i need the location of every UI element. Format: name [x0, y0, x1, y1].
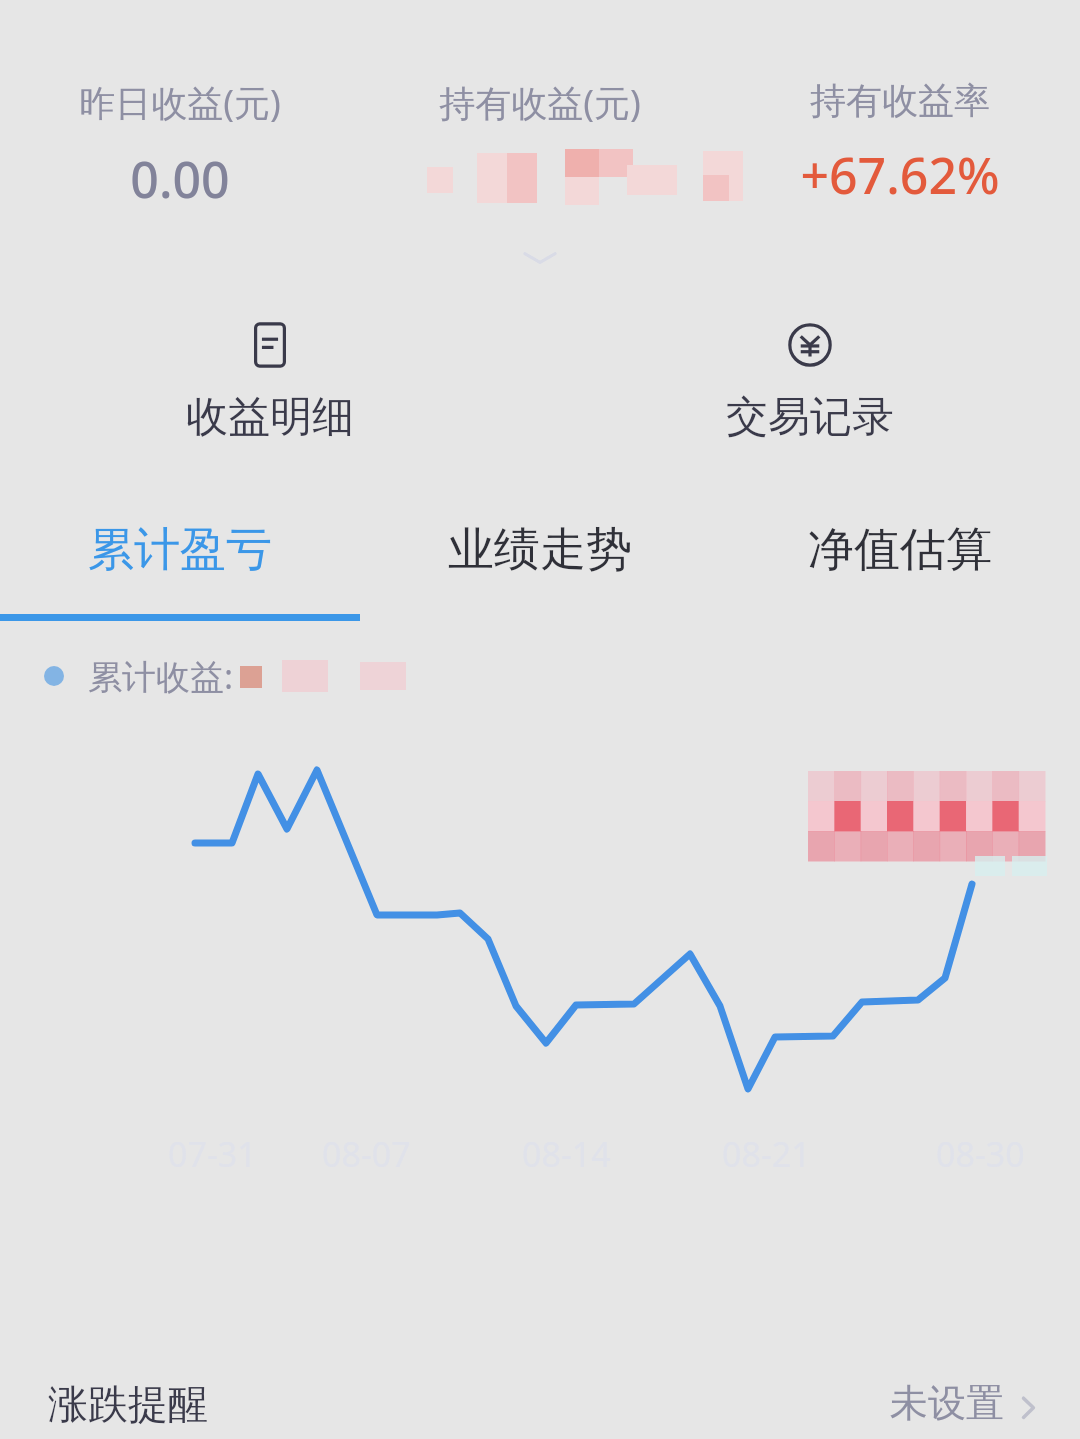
- staticText: +67.62%: [800, 141, 1000, 209]
- button[interactable]: 交易记录: [540, 321, 1080, 444]
- staticText: 昨日收益(元): [79, 78, 281, 127]
- button[interactable]: 持有收益率: [720, 78, 1080, 209]
- staticText: 业绩走势: [448, 521, 632, 579]
- button[interactable]: 累计盈亏: [0, 510, 360, 590]
- button[interactable]: 净值估算: [720, 510, 1080, 590]
- button[interactable]: 展开: [517, 247, 563, 269]
- staticText: 未设置: [890, 1379, 1004, 1427]
- button[interactable]: 业绩走势: [360, 510, 720, 590]
- staticText: 累计盈亏: [88, 521, 272, 579]
- staticText: 收益明细: [186, 391, 354, 444]
- button[interactable]: 收益明细: [0, 321, 540, 444]
- staticText: 持有收益率: [810, 78, 990, 123]
- button[interactable]: 持有收益(元): [360, 78, 720, 201]
- staticText: 持有收益(元): [439, 78, 641, 127]
- button[interactable]: 涨跌提醒: [0, 1379, 1080, 1439]
- staticText: 0.00: [130, 145, 230, 213]
- staticText: 净值估算: [808, 521, 992, 579]
- button[interactable]: 昨日收益(元): [0, 78, 360, 213]
- staticText: 交易记录: [726, 391, 894, 444]
- staticText: 累计收益:: [88, 653, 234, 699]
- staticText: 涨跌提醒: [48, 1379, 208, 1429]
